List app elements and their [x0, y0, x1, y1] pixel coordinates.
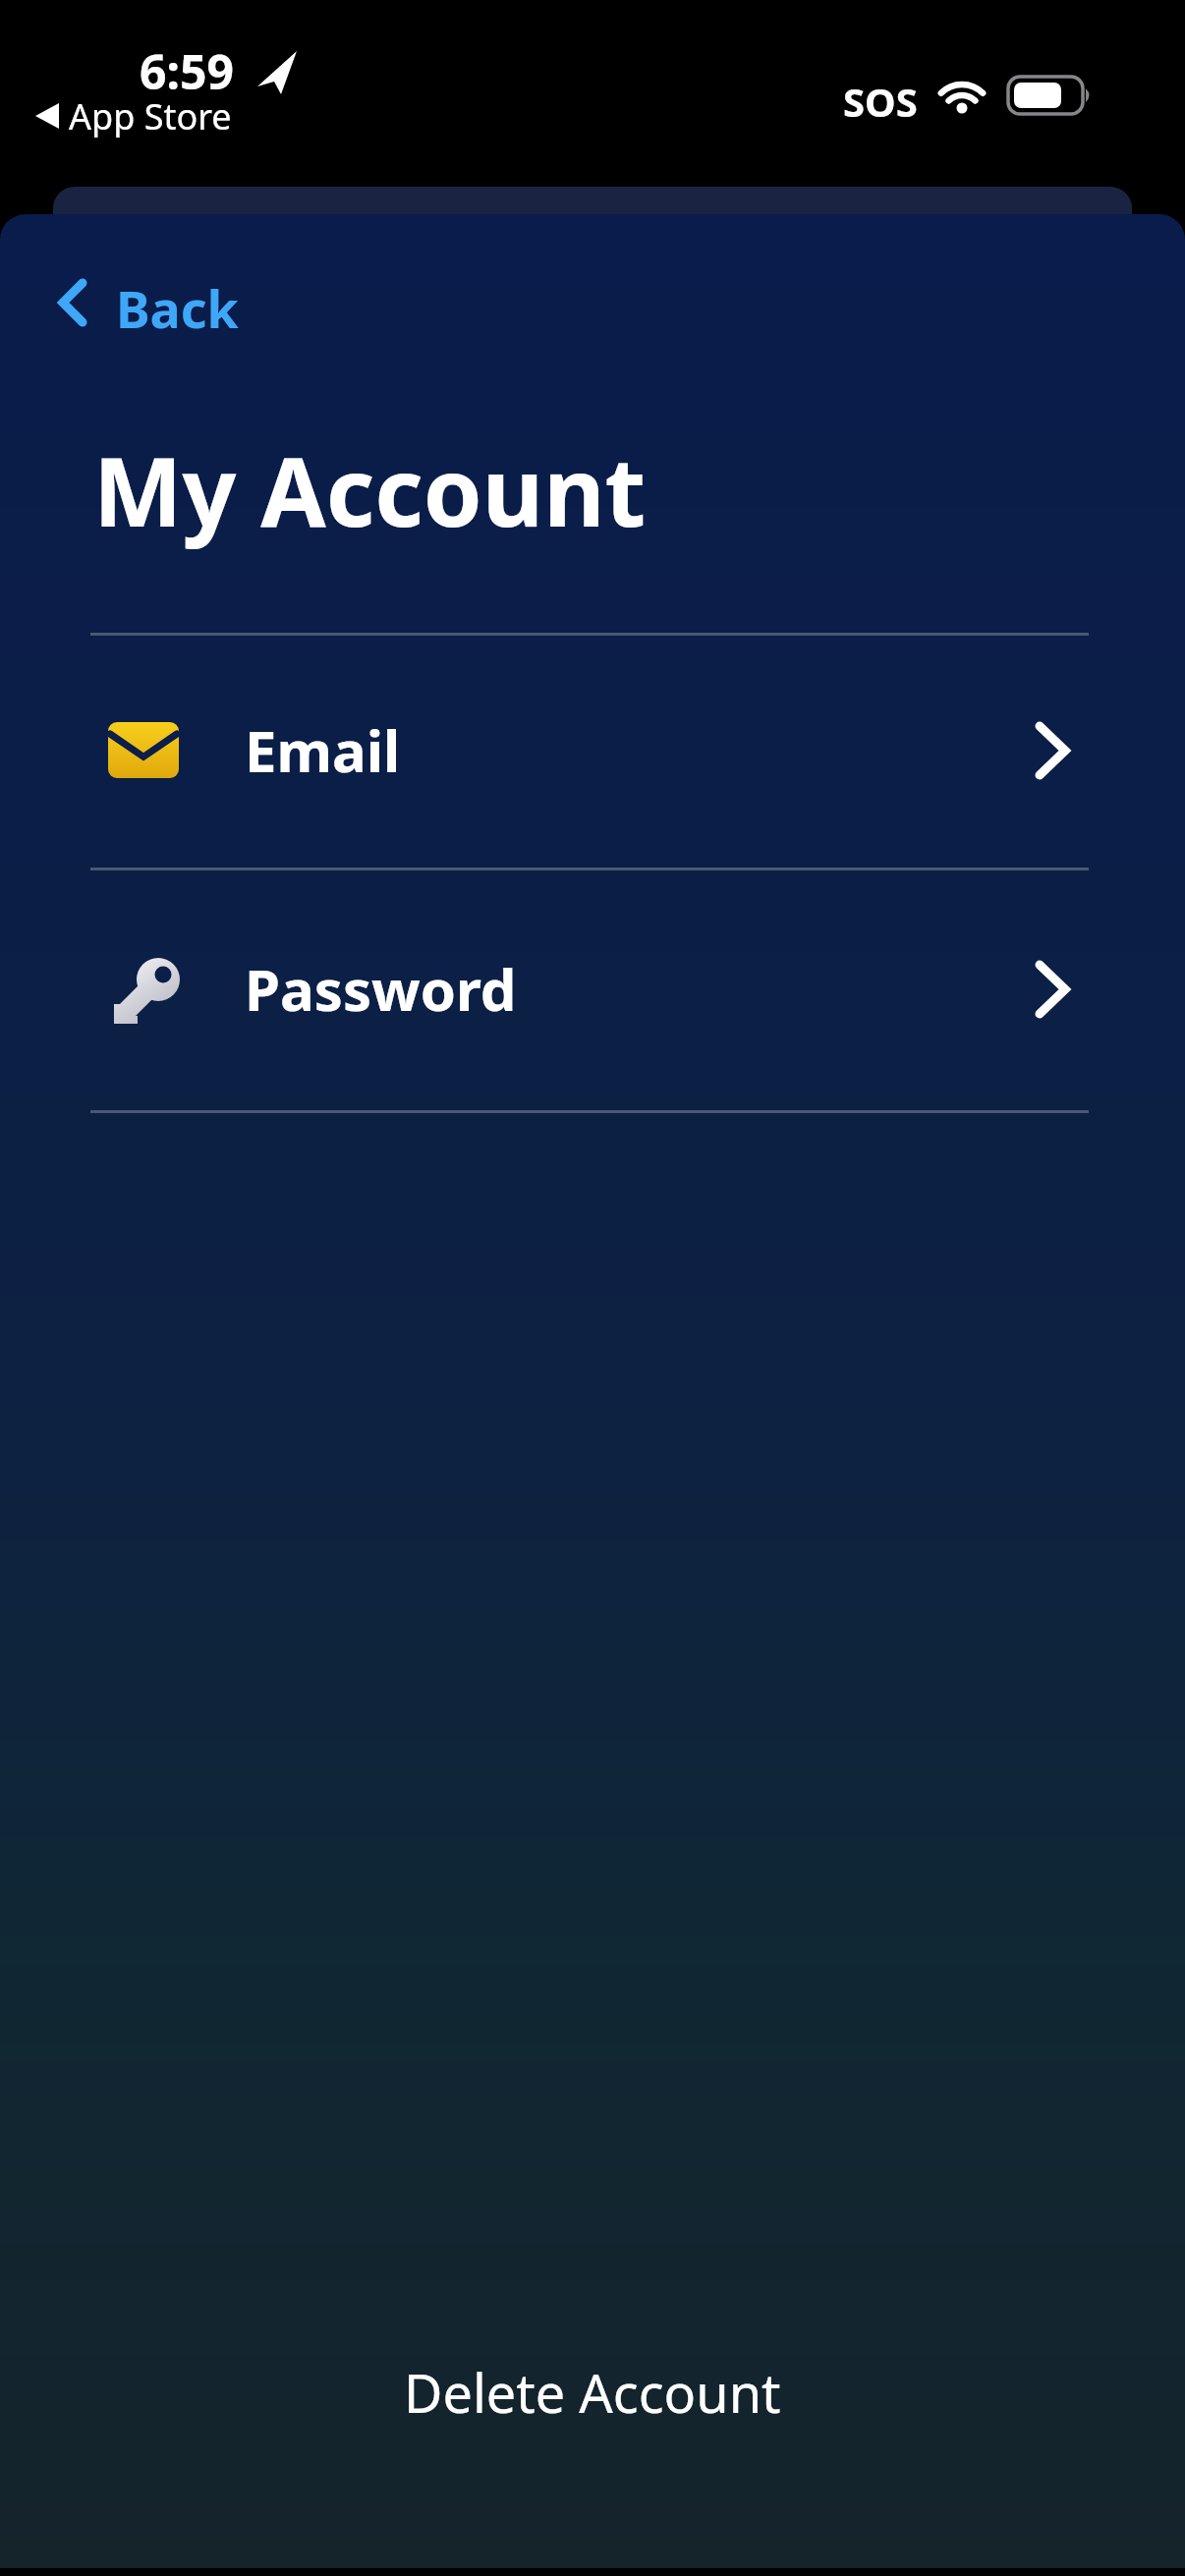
button[interactable]: Password	[88, 869, 1091, 1108]
button[interactable]: Back	[55, 273, 239, 332]
staticText: App Store	[69, 92, 232, 138]
staticText: Back	[116, 273, 239, 332]
staticText: Delete Account	[404, 2356, 781, 2429]
staticText: Email	[245, 711, 401, 789]
staticText: 6:59	[140, 39, 234, 96]
button[interactable]: Delete Account	[404, 2356, 781, 2429]
staticText: My Account	[93, 425, 647, 553]
staticText: SOS	[843, 75, 918, 118]
button[interactable]: Email	[88, 635, 1091, 866]
staticText: Password	[245, 950, 517, 1028]
